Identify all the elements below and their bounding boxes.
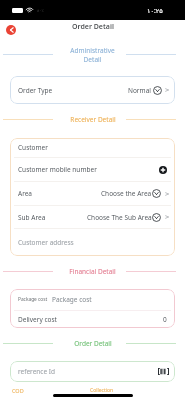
- staticText: Collection: [90, 387, 114, 394]
- staticText: Package cost: [52, 295, 92, 304]
- staticText: Sub Area: [18, 213, 46, 222]
- staticText: Customer: [18, 143, 48, 152]
- staticText: Delivery cost: [18, 315, 57, 324]
- staticText: Order Detail: [72, 22, 114, 32]
- staticText: Customer mobile number: [18, 165, 97, 174]
- staticText: ۸۰٪: [37, 8, 44, 13]
- staticText: COD: [12, 387, 24, 394]
- button[interactable]: Area: [10, 182, 175, 205]
- staticText: Financial Detail: [69, 267, 116, 276]
- staticText: Order Type: [18, 86, 53, 95]
- staticText: Package cost: [18, 296, 48, 303]
- staticText: Order Detail: [74, 339, 112, 348]
- staticText: ۱۰:۲۵: [147, 6, 163, 15]
- staticText: Receiver Detail: [70, 115, 116, 124]
- staticText: Administrative Detail: [70, 46, 115, 64]
- button[interactable]: Back: [6, 25, 16, 35]
- button[interactable]: Sub Area: [10, 206, 175, 228]
- button[interactable]: Customer mobile number: [10, 158, 175, 181]
- staticText: Choose the Area: [101, 189, 152, 198]
- button[interactable]: Customer: [10, 138, 175, 157]
- button[interactable]: Order Type: [10, 76, 175, 104]
- button[interactable]: reference Id: [10, 361, 175, 382]
- button[interactable]: Delivery cost: [10, 311, 175, 328]
- staticText: 0: [163, 315, 167, 324]
- staticText: Choose The Sub Area: [87, 213, 152, 222]
- staticText: Customer address: [18, 238, 74, 247]
- staticText: Normal: [128, 86, 151, 95]
- staticText: Area: [18, 189, 33, 198]
- button[interactable]: Package cost: [10, 289, 175, 310]
- button[interactable]: Scan barcode: [158, 368, 169, 375]
- staticText: reference Id: [18, 367, 56, 376]
- button[interactable]: Customer address: [10, 229, 175, 256]
